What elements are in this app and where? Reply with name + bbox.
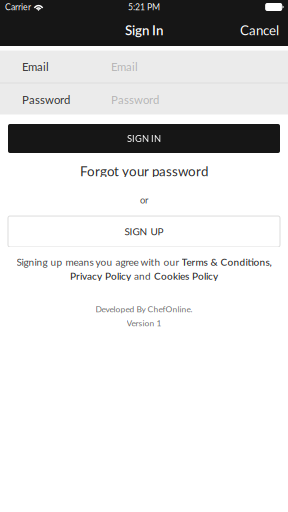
staticText: Privacy Policy [70,270,131,282]
button[interactable]: Terms & Conditions, [181,256,271,268]
staticText: Carrier [5,2,31,12]
staticText: or [140,194,148,206]
staticText: Developed By ChefOnline. [95,304,192,314]
staticText: Email [111,60,138,73]
button[interactable]: Privacy Policy [70,270,131,282]
staticText: SIGN IN [127,133,161,144]
staticText: Password [22,93,70,106]
button[interactable]: SIGN UP [8,216,280,247]
staticText: Cancel [240,22,279,38]
staticText: Version 1 [126,318,161,328]
staticText: Signing up means you agree with our [16,256,181,268]
staticText: 5:21 PM [128,2,160,12]
button[interactable]: Cancel [230,18,288,42]
staticText: Forgot your password [80,163,208,179]
staticText: Cookies Policy [154,270,218,282]
staticText: Terms & Conditions, [181,256,271,268]
button[interactable]: SIGN IN [8,124,280,153]
staticText: Sign In [125,22,163,38]
staticText: Email [22,60,49,73]
button[interactable]: Cookies Policy [154,270,218,282]
staticText: and [131,270,154,282]
staticText: SIGN UP [124,225,163,237]
button[interactable]: Forgot your password [0,165,288,177]
staticText: Password [111,93,159,106]
